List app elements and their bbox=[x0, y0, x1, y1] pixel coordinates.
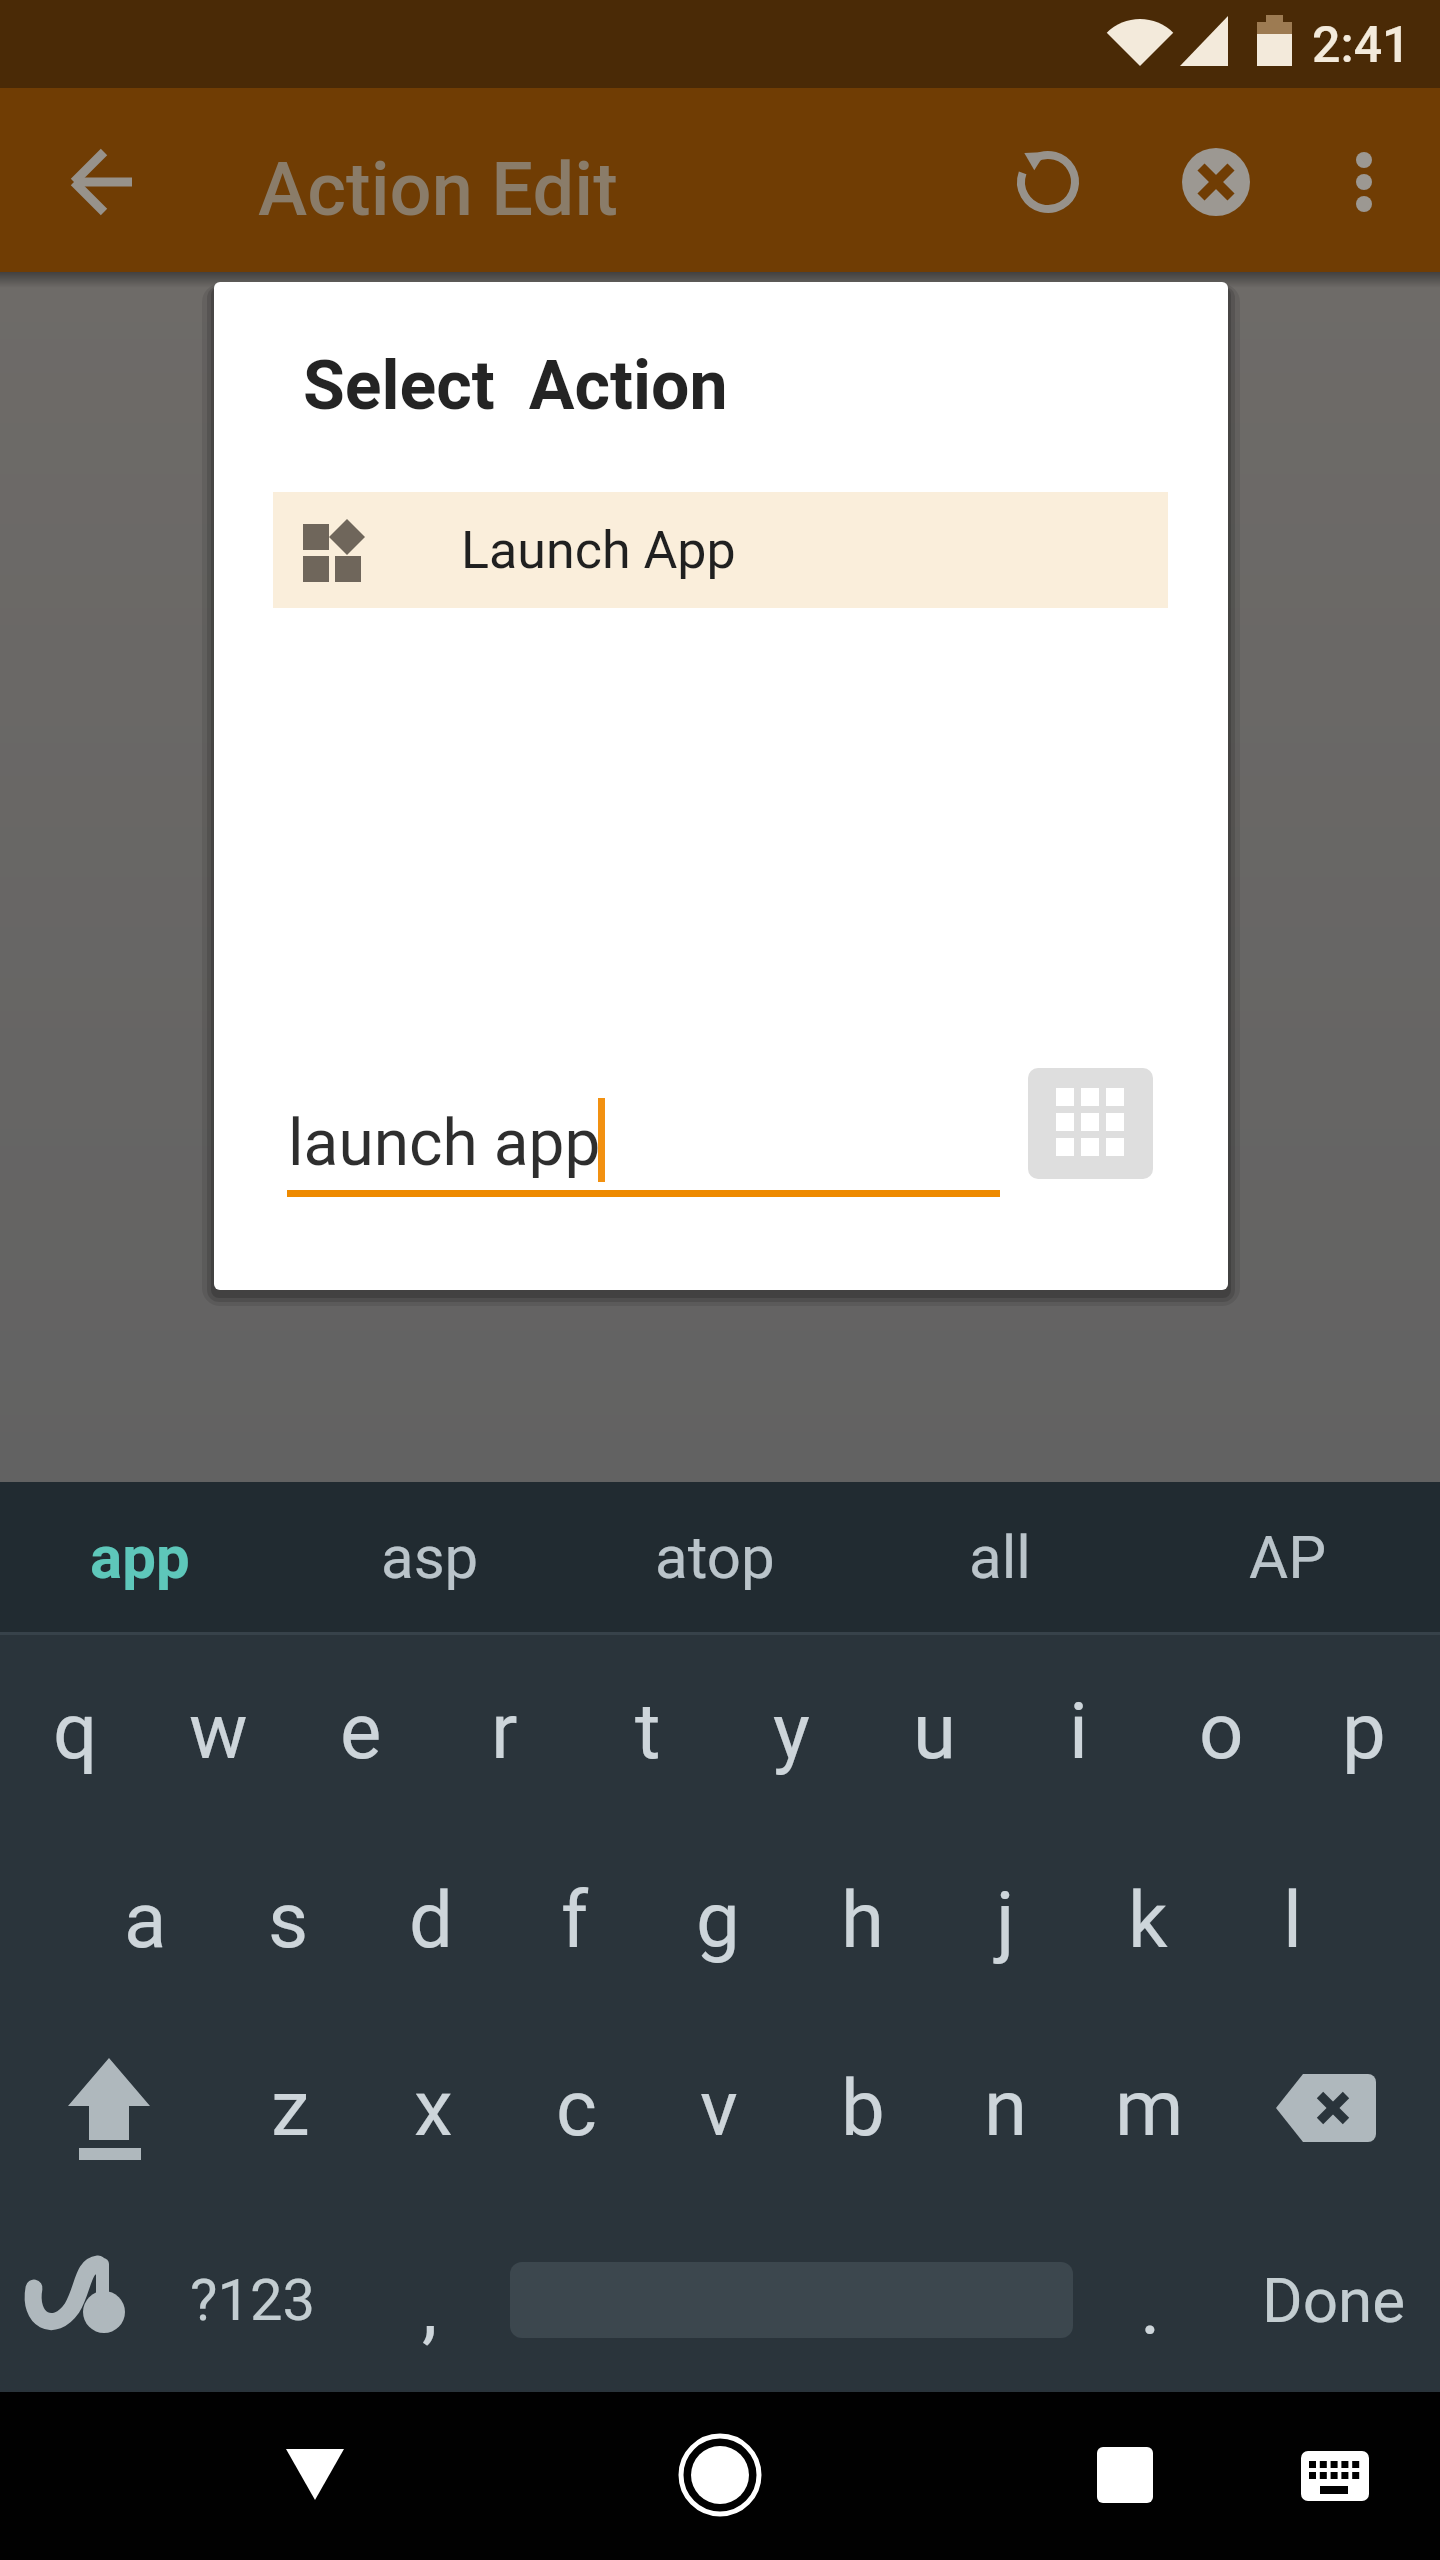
staticText: h bbox=[841, 1875, 884, 1966]
staticText: AP bbox=[1249, 1522, 1326, 1592]
button[interactable]: k bbox=[1078, 1850, 1218, 1990]
button[interactable]: c bbox=[506, 2038, 646, 2178]
button[interactable]: l bbox=[1222, 1850, 1362, 1990]
staticText: m bbox=[1115, 2063, 1184, 2154]
staticText: v bbox=[700, 2063, 738, 2154]
button[interactable]: h bbox=[792, 1850, 932, 1990]
staticText: c bbox=[556, 2063, 597, 2154]
staticText: e bbox=[340, 1686, 382, 1777]
staticText: 2:41 bbox=[1312, 16, 1411, 75]
staticText: n bbox=[984, 2063, 1028, 2154]
button[interactable]: ?123 bbox=[143, 2230, 363, 2370]
button[interactable]: n bbox=[936, 2038, 1076, 2178]
button[interactable]: all bbox=[890, 1487, 1110, 1627]
staticText: Launch App bbox=[461, 520, 736, 581]
button[interactable] bbox=[280, 2440, 350, 2510]
staticText: Done bbox=[1262, 2264, 1406, 2337]
staticText: a bbox=[124, 1875, 167, 1966]
button[interactable]: i bbox=[1008, 1661, 1148, 1801]
button[interactable] bbox=[680, 2435, 760, 2515]
staticText: s bbox=[268, 1875, 309, 1966]
button[interactable]: u bbox=[864, 1661, 1004, 1801]
button[interactable]: p bbox=[1294, 1661, 1434, 1801]
staticText: g bbox=[696, 1875, 740, 1966]
staticText: r bbox=[491, 1686, 518, 1777]
staticText: asp bbox=[381, 1522, 479, 1592]
button[interactable]: j bbox=[935, 1850, 1075, 1990]
button[interactable]: AP bbox=[1177, 1487, 1397, 1627]
staticText: x bbox=[414, 2063, 453, 2154]
button[interactable] bbox=[1014, 148, 1082, 216]
button[interactable]: s bbox=[218, 1850, 358, 1990]
staticText: u bbox=[913, 1686, 956, 1777]
button[interactable] bbox=[1270, 2060, 1386, 2156]
button[interactable]: f bbox=[505, 1850, 645, 1990]
staticText: q bbox=[53, 1686, 98, 1777]
button[interactable]: e bbox=[291, 1661, 431, 1801]
button[interactable] bbox=[1340, 146, 1388, 218]
button[interactable]: x bbox=[363, 2038, 503, 2178]
staticText: launch app bbox=[288, 1106, 601, 1181]
staticText: z bbox=[271, 2063, 310, 2154]
button[interactable] bbox=[1182, 148, 1250, 216]
staticText: atop bbox=[655, 1522, 775, 1592]
staticText: t bbox=[635, 1686, 661, 1777]
button[interactable]: o bbox=[1151, 1661, 1291, 1801]
staticText: d bbox=[409, 1875, 453, 1966]
button[interactable]: r bbox=[434, 1661, 574, 1801]
button[interactable] bbox=[273, 492, 1168, 608]
staticText: i bbox=[1069, 1686, 1088, 1777]
button[interactable] bbox=[66, 146, 138, 218]
staticText: p bbox=[1342, 1686, 1386, 1777]
button[interactable]: q bbox=[5, 1661, 145, 1801]
staticText: f bbox=[561, 1875, 589, 1966]
staticText: , bbox=[422, 2262, 438, 2353]
button[interactable]: z bbox=[220, 2038, 360, 2178]
button[interactable]: Done bbox=[1224, 2230, 1440, 2370]
staticText: all bbox=[969, 1522, 1031, 1592]
staticText: app bbox=[90, 1522, 190, 1592]
button[interactable]: t bbox=[578, 1661, 718, 1801]
staticText: y bbox=[773, 1686, 810, 1777]
staticText: Action Edit bbox=[258, 146, 618, 233]
button[interactable]: v bbox=[649, 2038, 789, 2178]
button[interactable]: m bbox=[1079, 2038, 1219, 2178]
button[interactable]: w bbox=[148, 1661, 288, 1801]
button[interactable] bbox=[287, 1080, 1000, 1197]
staticText: ?123 bbox=[190, 2266, 316, 2334]
button[interactable] bbox=[1097, 2447, 1153, 2503]
button[interactable]: atop bbox=[605, 1487, 825, 1627]
staticText: o bbox=[1199, 1686, 1244, 1777]
staticText: l bbox=[1283, 1875, 1302, 1966]
button[interactable]: asp bbox=[320, 1487, 540, 1627]
staticText: Select Action bbox=[303, 346, 728, 426]
button[interactable] bbox=[20, 2250, 130, 2350]
button[interactable] bbox=[1028, 1068, 1153, 1179]
button[interactable]: g bbox=[648, 1850, 788, 1990]
button[interactable]: , bbox=[360, 2237, 500, 2377]
staticText: k bbox=[1128, 1875, 1168, 1966]
button[interactable]: y bbox=[721, 1661, 861, 1801]
button[interactable] bbox=[1290, 2440, 1380, 2510]
staticText: b bbox=[841, 2063, 885, 2154]
button[interactable]: b bbox=[793, 2038, 933, 2178]
button[interactable]: a bbox=[75, 1850, 215, 1990]
staticText: . bbox=[1140, 2262, 1161, 2353]
staticText: w bbox=[189, 1686, 248, 1777]
button[interactable]: app bbox=[30, 1487, 250, 1627]
button[interactable]: d bbox=[361, 1850, 501, 1990]
button[interactable] bbox=[60, 2040, 160, 2176]
staticText: j bbox=[996, 1875, 1015, 1966]
button[interactable]: . bbox=[1080, 2237, 1220, 2377]
